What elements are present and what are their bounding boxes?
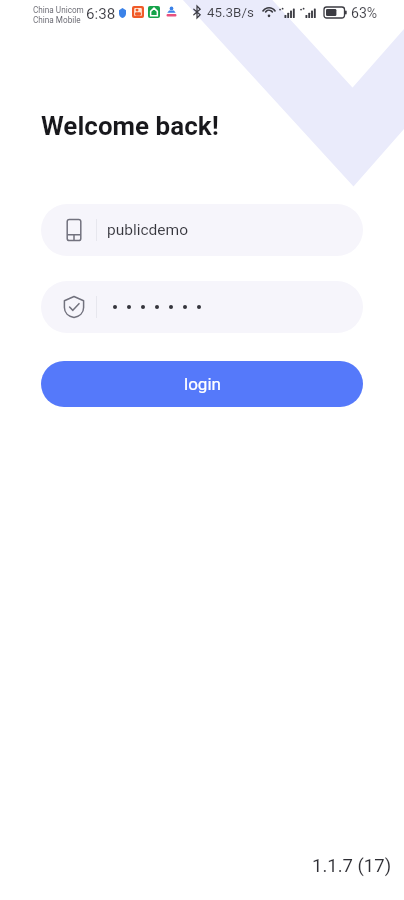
button[interactable]: Password — [41, 281, 363, 333]
staticText: 6:38 — [86, 5, 116, 23]
other: Username — [63, 219, 85, 241]
staticText: login — [184, 374, 221, 394]
staticText: 45.3B/s — [207, 5, 254, 21]
other: Password — [63, 296, 85, 318]
staticText: China Unicom — [33, 5, 84, 15]
button[interactable]: Username — [41, 204, 363, 256]
staticText: 1.1.7 (17) — [312, 855, 392, 877]
staticText: publicdemo — [107, 221, 188, 239]
staticText: China Mobile — [33, 15, 81, 25]
button[interactable]: login — [41, 361, 363, 407]
staticText: 63% — [351, 5, 378, 22]
staticText: Welcome back! — [41, 111, 219, 141]
